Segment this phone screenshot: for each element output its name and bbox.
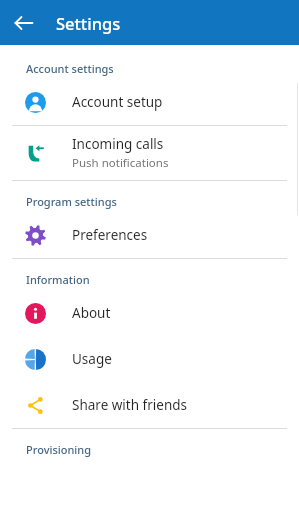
staticText: Information: [26, 272, 90, 287]
button[interactable]: Back: [8, 7, 40, 39]
staticText: Usage: [72, 350, 112, 368]
staticText: Share with friends: [72, 396, 188, 414]
button[interactable]: Account setup: [0, 79, 299, 125]
staticText: Preferences: [72, 226, 148, 244]
staticText: About: [72, 304, 111, 322]
staticText: Account settings: [26, 61, 114, 76]
staticText: Incoming calls: [72, 135, 164, 153]
button[interactable]: Preferences: [0, 212, 299, 258]
staticText: Account setup: [72, 93, 163, 111]
button[interactable]: Incoming calls: [0, 126, 299, 180]
staticText: Provisioning: [26, 442, 92, 457]
button[interactable]: About: [0, 290, 299, 336]
button[interactable]: Usage: [0, 336, 299, 382]
staticText: Program settings: [26, 194, 117, 209]
staticText: Settings: [56, 12, 121, 34]
staticText: Push notifications: [72, 155, 169, 171]
button[interactable]: Share with friends: [0, 382, 299, 428]
